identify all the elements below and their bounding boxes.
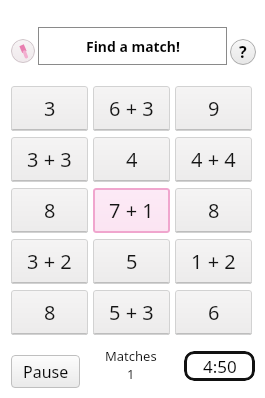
button[interactable]: 8 [11, 290, 88, 335]
button[interactable] [11, 39, 35, 63]
staticText: 8 [44, 299, 56, 326]
button[interactable]: 6 + 3 [93, 86, 170, 131]
staticText: Matches [105, 347, 157, 365]
staticText: ? [239, 41, 247, 63]
staticText: 7 + 1 [109, 197, 154, 224]
button[interactable]: 4:50 [184, 351, 255, 381]
button[interactable]: 1 + 2 [175, 239, 252, 284]
staticText: Pause [23, 361, 69, 383]
button[interactable]: Pause [11, 355, 80, 388]
staticText: 5 + 3 [109, 299, 154, 326]
button[interactable]: 3 [11, 86, 88, 131]
button[interactable]: 7 + 1 [93, 188, 170, 233]
staticText: 5 [126, 248, 138, 275]
staticText: 3 + 3 [27, 146, 72, 173]
button[interactable]: 6 [175, 290, 252, 335]
button[interactable]: 4 + 4 [175, 137, 252, 182]
staticText: 4:50 [203, 355, 237, 378]
staticText: 9 [208, 95, 220, 122]
staticText: 6 [208, 299, 220, 326]
staticText: 3 + 2 [27, 248, 72, 275]
button[interactable]: 5 [93, 239, 170, 284]
staticText: 1 + 2 [191, 248, 236, 275]
button[interactable]: 3 + 2 [11, 239, 88, 284]
button[interactable]: 8 [11, 188, 88, 233]
button[interactable]: ? [230, 39, 256, 65]
button[interactable]: 9 [175, 86, 252, 131]
button[interactable]: Find a match! [38, 27, 227, 65]
staticText: 1 [127, 365, 135, 383]
staticText: 8 [208, 197, 220, 224]
button[interactable]: 8 [175, 188, 252, 233]
button[interactable]: 3 + 3 [11, 137, 88, 182]
button[interactable]: 4 [93, 137, 170, 182]
button[interactable]: 5 + 3 [93, 290, 170, 335]
staticText: Find a match! [86, 37, 180, 56]
staticText: 3 [44, 95, 56, 122]
staticText: 4 + 4 [191, 146, 236, 173]
staticText: 8 [44, 197, 56, 224]
staticText: 6 + 3 [109, 95, 154, 122]
staticText: 4 [126, 146, 138, 173]
